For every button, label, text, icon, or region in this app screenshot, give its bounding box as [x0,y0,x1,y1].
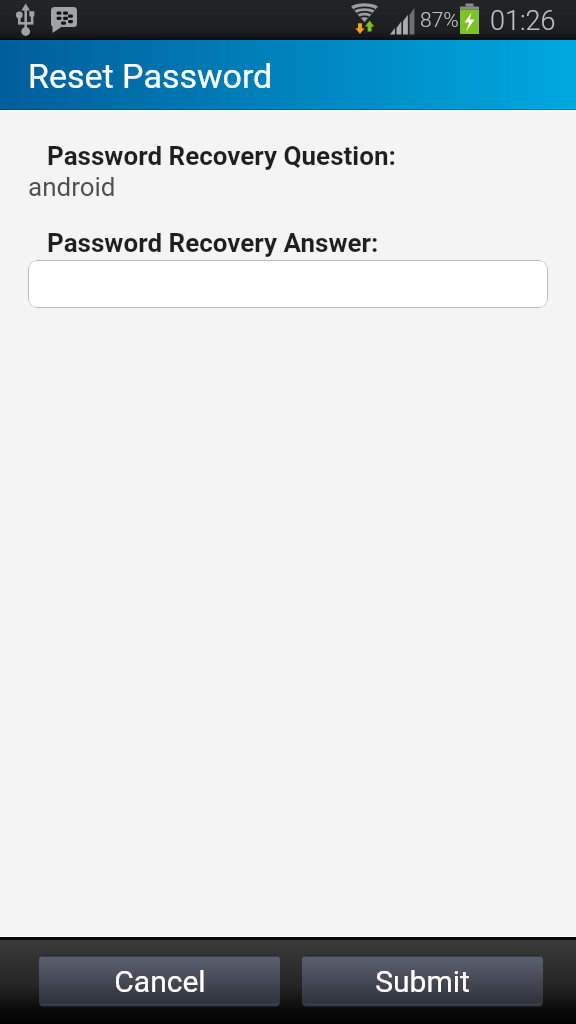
button[interactable]: Cancel [39,955,280,1007]
staticText: Password Recovery Question: [47,141,396,171]
staticText: Password Recovery Answer: [47,228,379,258]
staticText: Submit [375,964,470,999]
button[interactable]: Submit [302,955,543,1007]
staticText: 87% [420,8,459,33]
button[interactable]: Password recovery answer input [28,260,548,308]
staticText: 01:26 [490,5,556,37]
staticText: Cancel [114,964,206,999]
staticText: android [28,172,116,202]
staticText: Reset Password [28,56,273,96]
